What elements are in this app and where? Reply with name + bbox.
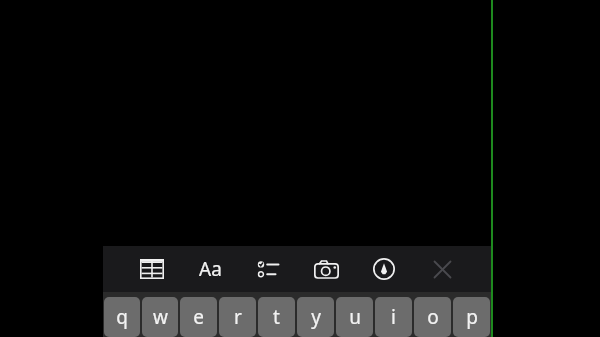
button[interactable]: e: [180, 297, 217, 337]
button[interactable]: p: [453, 297, 490, 337]
button[interactable]: i: [375, 297, 412, 337]
staticText: p: [466, 304, 478, 330]
button[interactable]: Camera: [307, 249, 345, 289]
button[interactable]: Text formatting: [191, 249, 229, 289]
button[interactable]: o: [414, 297, 451, 337]
staticText: e: [193, 304, 204, 330]
staticText: r: [234, 304, 242, 330]
staticText: u: [349, 304, 361, 330]
staticText: w: [153, 304, 168, 330]
button[interactable]: Checklist: [249, 249, 287, 289]
button[interactable]: t: [258, 297, 295, 337]
staticText: q: [116, 304, 128, 330]
staticText: y: [311, 304, 321, 330]
button[interactable]: r: [219, 297, 256, 337]
button[interactable]: Insert table: [133, 249, 171, 289]
button[interactable]: u: [336, 297, 373, 337]
staticText: t: [273, 304, 280, 330]
button[interactable]: Close: [423, 249, 461, 289]
staticText: Aa: [199, 256, 222, 282]
button[interactable]: w: [142, 297, 178, 337]
button[interactable]: q: [104, 297, 140, 337]
staticText: i: [391, 304, 396, 330]
staticText: o: [427, 304, 439, 330]
button[interactable]: y: [297, 297, 334, 337]
button[interactable]: Draw: [365, 249, 403, 289]
